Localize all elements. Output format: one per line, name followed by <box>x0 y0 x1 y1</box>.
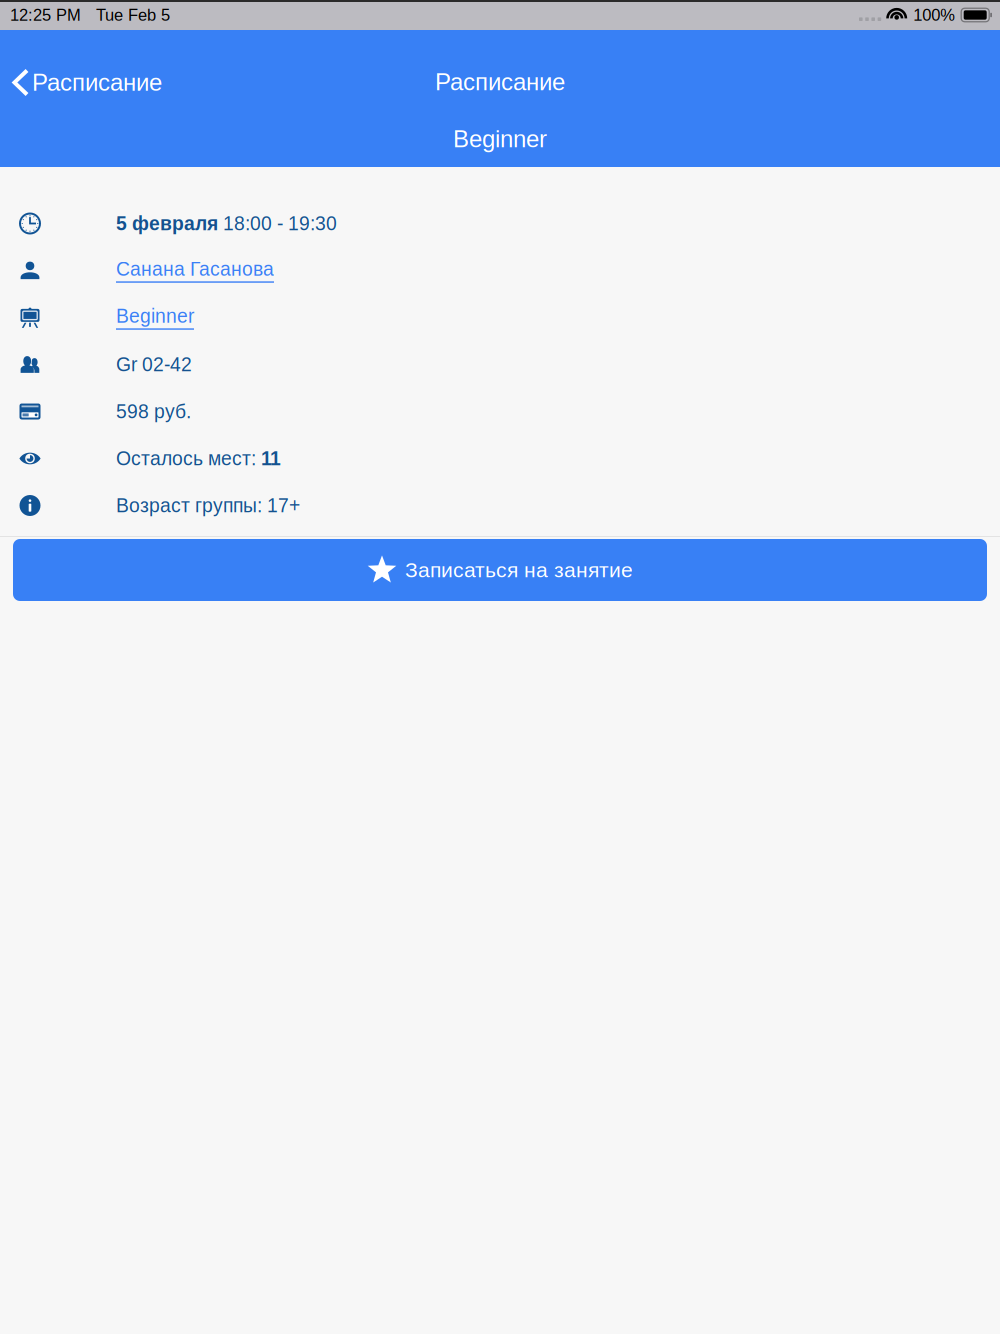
staticText: 598 руб. <box>116 401 191 422</box>
staticText: Tue Feb 5 <box>96 6 170 24</box>
button[interactable]: Beginner <box>116 305 194 330</box>
staticText: 5 февраля <box>116 213 218 234</box>
staticText: 11 <box>261 448 281 469</box>
staticText: Gr 02-42 <box>116 354 192 375</box>
button[interactable]: Расписание <box>0 59 178 106</box>
button[interactable]: Санана Гасанова <box>116 258 274 283</box>
staticText: Записаться на занятие <box>405 558 633 582</box>
staticText: Расписание <box>435 69 565 95</box>
staticText: Расписание <box>32 69 162 96</box>
staticText: 12:25 PM <box>10 6 81 24</box>
staticText: 100% <box>913 6 955 24</box>
staticText: Beginner <box>453 126 547 152</box>
staticText: Beginner <box>116 305 194 327</box>
staticText: Санана Гасанова <box>116 258 274 280</box>
staticText: 18:00 - 19:30 <box>218 213 337 234</box>
button[interactable]: Записаться на занятие <box>13 539 987 601</box>
staticText: Возраст группы: 17+ <box>116 495 300 516</box>
staticText: Осталось мест: <box>116 448 261 469</box>
